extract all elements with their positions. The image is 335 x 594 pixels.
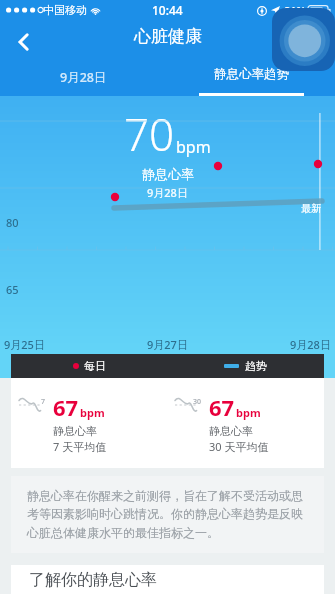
staticText: 静息心率 — [53, 424, 97, 438]
staticText: 80 — [6, 215, 19, 230]
staticText: 67 — [209, 392, 235, 422]
staticText: 最新 — [301, 202, 321, 215]
staticText: bpm — [80, 405, 105, 420]
button[interactable]: 了解你的静息心率 — [11, 565, 324, 594]
staticText: 7 — [41, 397, 46, 407]
staticText: 静息心率 — [209, 424, 253, 438]
staticText: bpm — [236, 405, 261, 420]
button[interactable]: 每日 — [11, 354, 167, 378]
button[interactable]: 静息心率趋势 — [167, 58, 335, 96]
button[interactable]: 30 — [175, 392, 324, 454]
button[interactable]: 9月28日 — [0, 58, 167, 96]
staticText: 每日 — [84, 359, 106, 373]
staticText: 7 天平均值 — [53, 439, 107, 454]
staticText: 9月28日 — [60, 69, 107, 86]
staticText: 81% — [284, 3, 306, 18]
staticText: 静息心率在你醒来之前测得，旨在了解不受活动或思考等因素影响时心跳情况。你的静息心… — [27, 488, 308, 541]
button[interactable]: 趋势 — [167, 354, 324, 378]
staticText: 9月28日 — [147, 185, 188, 200]
button[interactable]: Back — [6, 24, 42, 60]
staticText: 30 — [193, 397, 202, 407]
button[interactable]: 7 — [19, 392, 167, 454]
staticText: 9月25日 — [4, 337, 45, 352]
staticText: 心脏健康 — [134, 26, 202, 47]
staticText: 静息心率 — [142, 166, 194, 182]
staticText: 静息心率趋势 — [214, 66, 289, 82]
staticText: 67 — [53, 392, 79, 422]
staticText: 10:44 — [152, 2, 183, 18]
staticText: 9月27日 — [147, 337, 188, 352]
staticText: 9月28日 — [290, 337, 331, 352]
staticText: 70 — [124, 104, 175, 164]
staticText: 趋势 — [245, 359, 267, 373]
staticText: 了解你的静息心率 — [29, 570, 157, 590]
staticText: bpm — [176, 136, 211, 158]
staticText: 65 — [6, 282, 19, 297]
staticText: 30 天平均值 — [209, 439, 269, 454]
staticText: 中国移动 — [43, 3, 87, 17]
